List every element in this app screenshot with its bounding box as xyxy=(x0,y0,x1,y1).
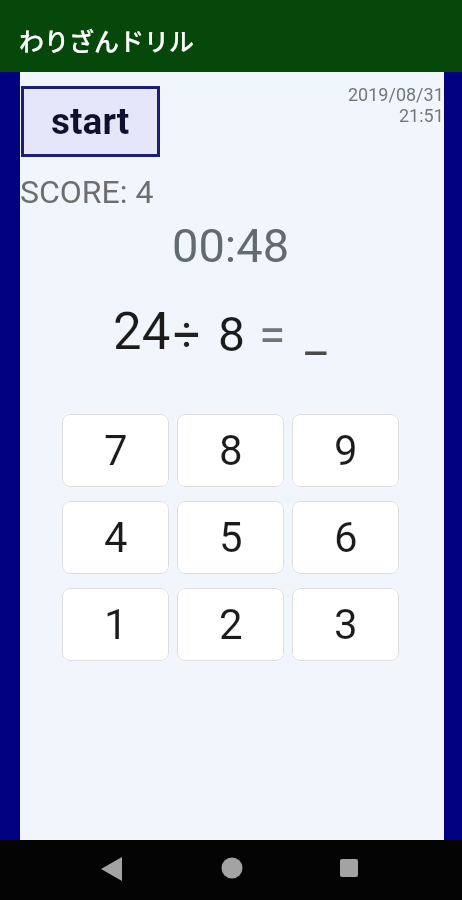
button[interactable] xyxy=(92,850,132,890)
button[interactable]: 7 xyxy=(62,414,169,487)
staticText: 7 xyxy=(104,426,128,475)
button[interactable]: 4 xyxy=(62,501,169,574)
staticText: 21:51 xyxy=(399,105,444,126)
staticText: 8 xyxy=(219,426,243,475)
staticText: 24 xyxy=(113,302,171,362)
button[interactable] xyxy=(329,848,369,888)
staticText: 2019/08/31 xyxy=(348,84,444,105)
staticText: 8 xyxy=(218,306,245,362)
button[interactable]: 9 xyxy=(292,414,399,487)
button[interactable]: 8 xyxy=(177,414,284,487)
staticText: 1 xyxy=(104,600,128,649)
button[interactable]: start xyxy=(21,86,160,157)
staticText: _ xyxy=(305,306,327,362)
button[interactable]: 3 xyxy=(292,588,399,661)
staticText: 2 xyxy=(219,600,243,649)
button[interactable]: 6 xyxy=(292,501,399,574)
staticText: 5 xyxy=(219,513,243,562)
staticText: ÷ xyxy=(173,306,201,362)
staticText: わりざんドリル xyxy=(19,22,195,58)
staticText: SCORE: 4 xyxy=(20,173,154,211)
staticText: 00:48 xyxy=(172,218,290,273)
staticText: 3 xyxy=(334,600,358,649)
button[interactable]: 5 xyxy=(177,501,284,574)
staticText: 4 xyxy=(104,513,128,562)
button[interactable] xyxy=(212,848,252,888)
button[interactable]: 1 xyxy=(62,588,169,661)
staticText: 6 xyxy=(334,513,358,562)
staticText: start xyxy=(51,100,130,143)
staticText: 9 xyxy=(334,426,358,475)
staticText: = xyxy=(259,306,286,362)
button[interactable]: 2 xyxy=(177,588,284,661)
